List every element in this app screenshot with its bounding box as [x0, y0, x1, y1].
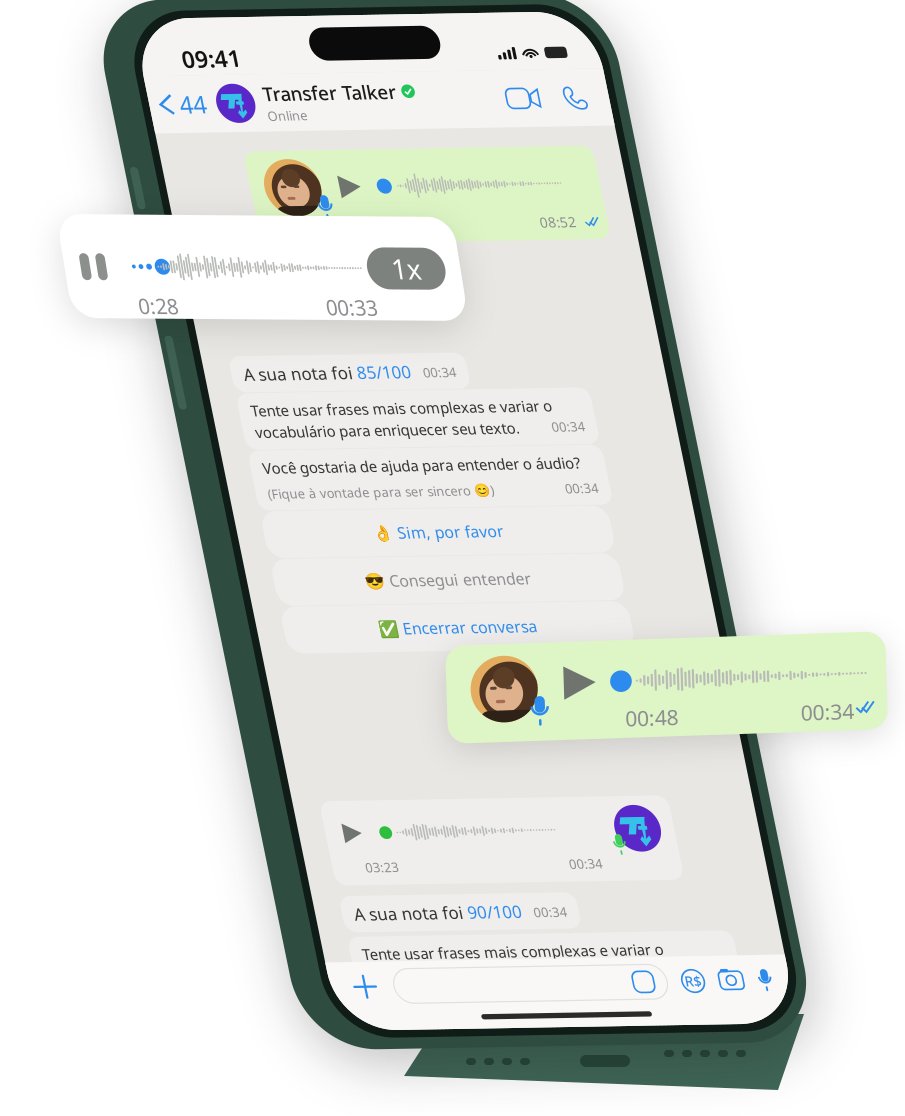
button[interactable]: 👌 Sim, por favor	[36, 655, 505, 717]
staticText: (Fique à vontade para ser sincero 😊)	[52, 620, 357, 643]
staticText: 0:28	[71, 77, 113, 105]
button[interactable]: 😎 Consegui entender	[36, 718, 505, 780]
staticText: 👌 Sim, por favor	[182, 672, 358, 700]
staticText: Online	[156, 120, 210, 143]
staticText: 1x	[343, 33, 374, 71]
staticText: 85/100	[205, 458, 278, 488]
staticText: 😎 Consegui entender	[158, 735, 382, 763]
staticText: 00:48	[180, 66, 234, 94]
staticText: ✅ Encerrar conversa	[163, 798, 377, 826]
button[interactable]: Video call	[474, 93, 534, 135]
staticText: 05:08	[243, 266, 292, 291]
staticText: Você gostaria de ajuda para entender o á…	[52, 584, 481, 611]
staticText: A sua nota foi	[52, 458, 205, 488]
staticText: 00:33	[268, 77, 322, 105]
staticText: Tente usar frases mais complexas e varia…	[52, 508, 458, 534]
staticText: 00:34	[358, 66, 412, 94]
staticText: Transfer Talker	[156, 85, 336, 119]
button[interactable]: ✅ Encerrar conversa	[36, 781, 505, 843]
staticText: vocabulário para enriquecer seu texto.	[52, 536, 408, 563]
staticText: 00:34	[453, 620, 498, 643]
staticText: 09:41	[56, 34, 136, 74]
staticText: 00:34	[294, 463, 339, 486]
button[interactable]: Voice call	[548, 89, 598, 139]
